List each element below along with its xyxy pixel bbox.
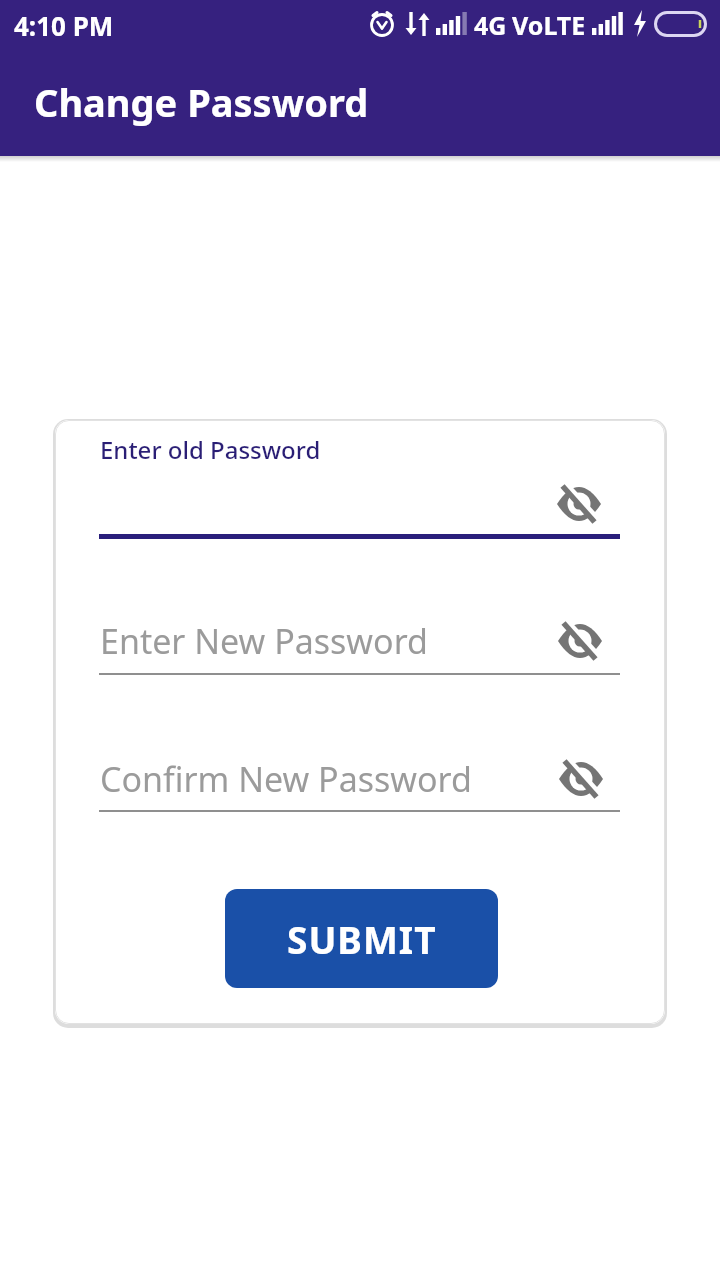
button[interactable]: Enter New Password: [100, 606, 621, 676]
staticText: Change Password: [34, 76, 369, 128]
button[interactable]: Confirm New Password: [100, 744, 621, 814]
staticText: SUBMIT: [287, 914, 437, 964]
staticText: 4G: [474, 8, 507, 42]
staticText: Enter old Password: [100, 433, 321, 466]
staticText: Confirm New Password: [100, 756, 472, 802]
button[interactable]: [99, 472, 620, 539]
staticText: 4:10 PM: [14, 8, 114, 43]
staticText: VoLTE: [512, 8, 586, 42]
button[interactable]: SUBMIT: [225, 889, 498, 988]
staticText: Enter New Password: [100, 618, 428, 664]
